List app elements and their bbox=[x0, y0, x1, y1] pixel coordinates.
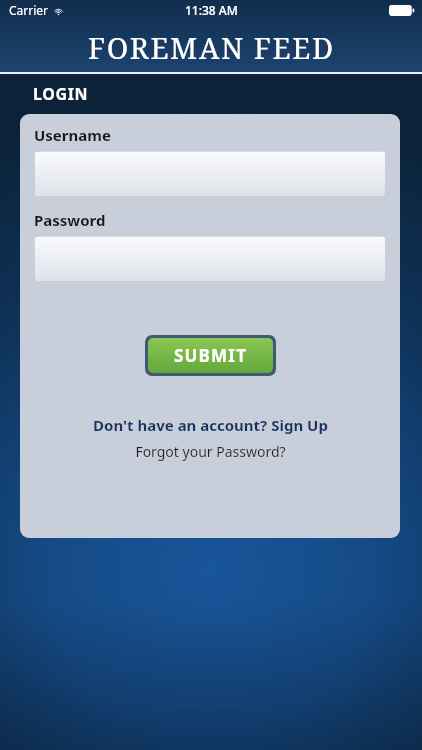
staticText: Don't have an account? Sign Up bbox=[93, 415, 328, 435]
staticText: SUBMIT bbox=[174, 344, 248, 367]
button[interactable]: Don't have an account? Sign Up bbox=[34, 415, 386, 435]
button[interactable]: SUBMIT bbox=[148, 338, 273, 373]
staticText: Forgot your Password? bbox=[135, 442, 286, 461]
staticText: Carrier bbox=[9, 2, 49, 18]
other: Battery bbox=[389, 5, 414, 16]
staticText: FOREMAN FEED bbox=[88, 28, 335, 67]
staticText: Username bbox=[34, 125, 111, 145]
button[interactable]: Forgot your Password? bbox=[34, 442, 386, 461]
button[interactable]: Password input bbox=[34, 236, 386, 282]
button[interactable]: Username input bbox=[34, 151, 386, 197]
staticText: LOGIN bbox=[33, 83, 89, 105]
staticText: Password bbox=[34, 210, 106, 230]
staticText: 11:38 AM bbox=[185, 2, 238, 18]
